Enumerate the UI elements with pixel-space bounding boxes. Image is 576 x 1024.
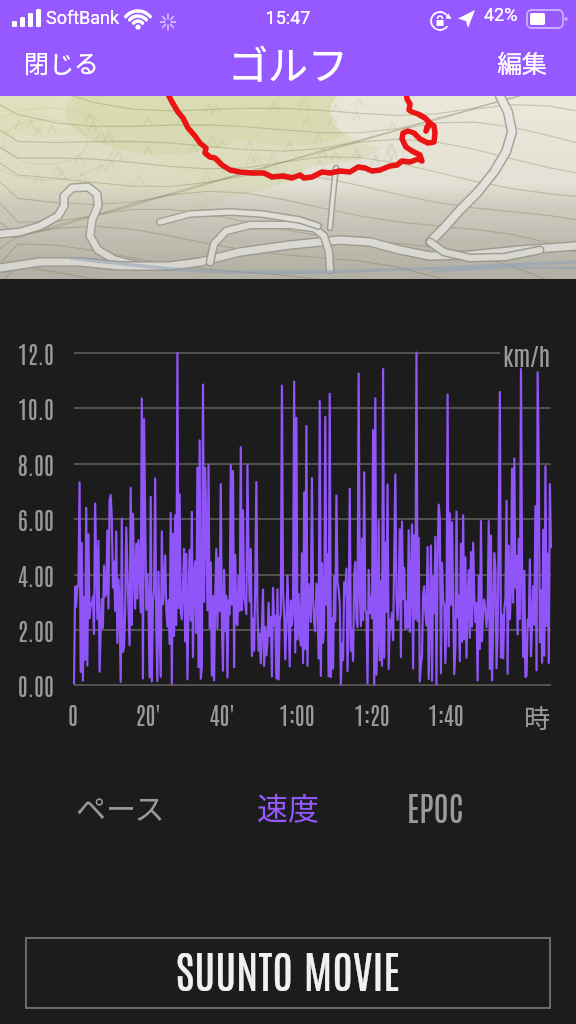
staticText: 速度: [257, 784, 319, 829]
staticText: ペース: [76, 785, 165, 828]
staticText: 0.00: [0, 669, 54, 700]
button[interactable]: 閉じる: [10, 38, 114, 86]
staticText: 6.00: [0, 503, 54, 534]
staticText: 12.0: [0, 337, 54, 368]
staticText: 15:47: [0, 7, 576, 28]
staticText: 2.00: [0, 614, 54, 645]
staticText: 8.00: [0, 448, 54, 479]
staticText: 40': [182, 698, 262, 729]
staticText: 10.0: [0, 392, 54, 423]
button[interactable]: EPOC: [360, 770, 510, 842]
button[interactable]: SUUNTO MOVIE: [27, 939, 549, 1007]
staticText: 閉じる: [24, 44, 100, 80]
staticText: 0: [33, 698, 113, 729]
staticText: SUUNTO MOVIE: [176, 939, 400, 997]
button[interactable]: 編集: [487, 38, 558, 86]
staticText: 20': [108, 698, 188, 729]
button[interactable]: ペース: [24, 770, 216, 842]
staticText: EPOC: [407, 785, 464, 828]
button[interactable]: 速度: [216, 770, 360, 842]
staticText: 42%: [484, 4, 518, 25]
staticText: 1:40: [406, 698, 486, 729]
staticText: 1:00: [257, 698, 337, 729]
staticText: km/h: [503, 339, 551, 370]
staticText: ゴルフ: [0, 34, 576, 92]
staticText: 1:20: [332, 698, 412, 729]
staticText: 時: [499, 698, 575, 736]
staticText: 編集: [497, 44, 548, 80]
staticText: 4.00: [0, 559, 54, 590]
staticText: SoftBank: [46, 7, 120, 28]
